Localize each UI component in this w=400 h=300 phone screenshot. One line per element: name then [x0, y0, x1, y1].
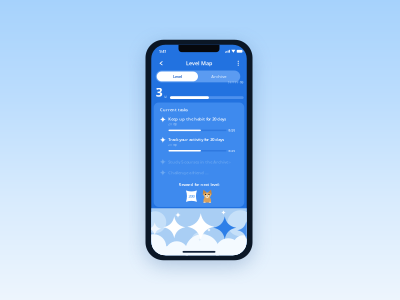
staticText: 20 exp — [168, 122, 177, 126]
staticText: Level — [173, 74, 182, 79]
button[interactable]: Challenge a friend … — [154, 170, 244, 175]
staticText: 50/100 exp — [228, 80, 244, 84]
staticText: Archive — [211, 74, 226, 79]
button[interactable]: Keep up the habit for 20 days — [154, 116, 244, 132]
button[interactable]: Archive — [198, 71, 239, 81]
staticText: 3 — [156, 84, 163, 100]
staticText: Keep up the habit for 20 days — [168, 116, 226, 122]
button[interactable]: Level — [157, 71, 198, 81]
staticText: Level Map — [186, 60, 212, 67]
staticText: 20 exp — [168, 143, 177, 146]
staticText: Track your activity for 20 days — [168, 137, 224, 142]
staticText: Current tasks — [160, 107, 188, 112]
staticText: lvl — [164, 96, 167, 99]
button[interactable]: More options — [234, 59, 243, 68]
staticText: 8/20 — [228, 149, 235, 152]
staticText: Study 5 courses in the Archive › — [168, 159, 230, 164]
staticText: Reward for next level: — [178, 182, 219, 187]
staticText: 9:41 — [159, 49, 166, 54]
button[interactable]: Study 5 courses in the Archive › — [154, 159, 244, 165]
button[interactable]: Track your activity for 20 days — [154, 137, 244, 152]
staticText: Challenge a friend … — [168, 170, 208, 175]
staticText: 200 — [188, 193, 194, 199]
button[interactable]: Back — [157, 59, 166, 68]
staticText: 8/20 — [228, 129, 235, 132]
